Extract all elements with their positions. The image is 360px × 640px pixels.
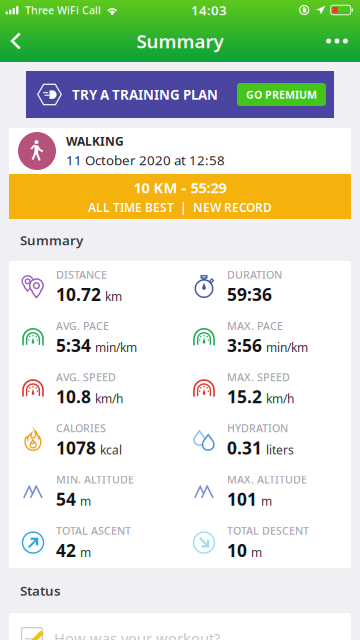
staticText: 1078 — [56, 436, 96, 459]
staticText: m — [251, 544, 262, 560]
staticText: How was your workout? — [54, 628, 220, 640]
staticText: AVG. SPEED — [56, 370, 116, 384]
staticText: 54 — [56, 487, 76, 510]
staticText: km/h — [266, 391, 294, 407]
staticText: ALL TIME BEST | NEW RECORD — [88, 199, 272, 215]
staticText: DURATION — [227, 267, 282, 282]
staticText: km/h — [95, 391, 123, 407]
staticText: m — [80, 544, 91, 560]
staticText: Summary — [136, 29, 223, 53]
staticText: 11 October 2020 at 12:58 — [66, 151, 225, 169]
staticText: MAX. ALTITUDE — [227, 472, 307, 486]
staticText: 101 — [227, 487, 257, 510]
staticText: kcal — [100, 442, 122, 458]
staticText: m — [261, 493, 272, 509]
staticText: TRY A TRAINING PLAN — [72, 86, 218, 103]
staticText: 10 — [227, 539, 247, 562]
staticText: MAX. SPEED — [227, 370, 290, 384]
staticText: CALORIES — [56, 421, 106, 435]
staticText: 14:03 — [191, 1, 227, 19]
staticText: m — [80, 493, 91, 509]
staticText: Summary — [20, 231, 83, 249]
staticText: 42 — [56, 539, 76, 562]
staticText: min/km — [95, 339, 137, 355]
staticText: MIN. ALTITUDE — [56, 472, 134, 486]
staticText: TOTAL ASCENT — [56, 523, 131, 538]
staticText: km — [105, 288, 122, 304]
staticText: min/km — [266, 339, 308, 355]
staticText: GO PREMIUM — [246, 87, 317, 102]
staticText: WALKING — [66, 133, 124, 149]
staticText: 10 KM - 55:29 — [133, 178, 226, 197]
staticText: MAX. PACE — [227, 319, 283, 333]
button[interactable]: TRY A TRAINING PLAN — [26, 71, 334, 118]
staticText: TOTAL DESCENT — [227, 523, 309, 538]
staticText: AVG. PACE — [56, 319, 109, 333]
staticText: 10.72 — [56, 283, 101, 306]
button[interactable]: Back — [0, 20, 46, 62]
staticText: 59:36 — [227, 283, 272, 306]
staticText: Status — [20, 582, 61, 599]
staticText: 5:34 — [56, 334, 91, 357]
staticText: Three WiFi Call — [25, 3, 101, 17]
staticText: DISTANCE — [56, 267, 107, 282]
staticText: 0.31 — [227, 436, 262, 459]
staticText: 10.8 — [56, 385, 91, 408]
staticText: liters — [266, 442, 294, 458]
button[interactable]: More options — [314, 20, 360, 62]
staticText: 3:56 — [227, 334, 262, 357]
staticText: 15.2 — [227, 385, 262, 408]
staticText: HYDRATION — [227, 421, 288, 435]
